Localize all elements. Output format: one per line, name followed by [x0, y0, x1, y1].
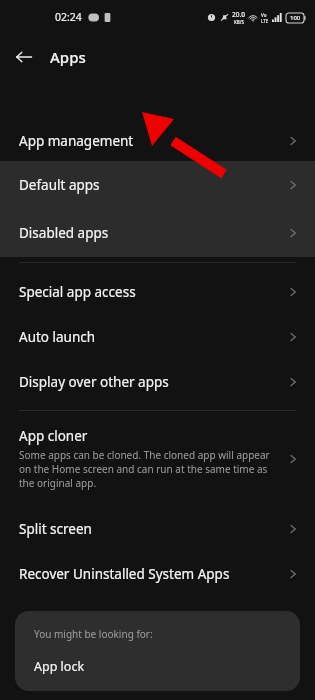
- button[interactable]: Special app access: [0, 269, 315, 314]
- staticText: Special app access: [19, 283, 136, 301]
- button[interactable]: Back: [8, 41, 40, 73]
- button[interactable]: Display over other apps: [0, 359, 315, 404]
- staticText: Disabled apps: [19, 224, 109, 242]
- staticText: 20.0: [232, 10, 245, 19]
- button[interactable]: You might be looking for:: [15, 611, 300, 691]
- staticText: KB/S: [234, 19, 244, 25]
- button[interactable]: Auto launch: [0, 314, 315, 359]
- staticText: Vo: [261, 12, 267, 18]
- staticText: App management: [19, 132, 134, 150]
- staticText: Auto launch: [19, 328, 96, 346]
- staticText: Display over other apps: [19, 373, 169, 391]
- staticText: App lock: [34, 658, 85, 675]
- staticText: Some apps can be cloned. The cloned app …: [19, 448, 279, 490]
- staticText: 100: [290, 14, 301, 22]
- button[interactable]: App cloner: [0, 417, 315, 500]
- button[interactable]: Recover Uninstalled System Apps: [0, 551, 315, 596]
- staticText: Apps: [50, 47, 86, 67]
- staticText: 02:24: [55, 10, 82, 24]
- staticText: App cloner: [19, 427, 88, 445]
- button[interactable]: App management: [0, 120, 315, 161]
- staticText: Recover Uninstalled System Apps: [19, 565, 230, 583]
- staticText: Default apps: [19, 176, 100, 194]
- button[interactable]: Disabled apps: [0, 209, 315, 257]
- staticText: LTE: [261, 18, 269, 24]
- button[interactable]: Split screen: [0, 506, 315, 551]
- button[interactable]: Default apps: [0, 161, 315, 209]
- staticText: You might be looking for:: [34, 627, 153, 641]
- staticText: Split screen: [19, 520, 92, 538]
